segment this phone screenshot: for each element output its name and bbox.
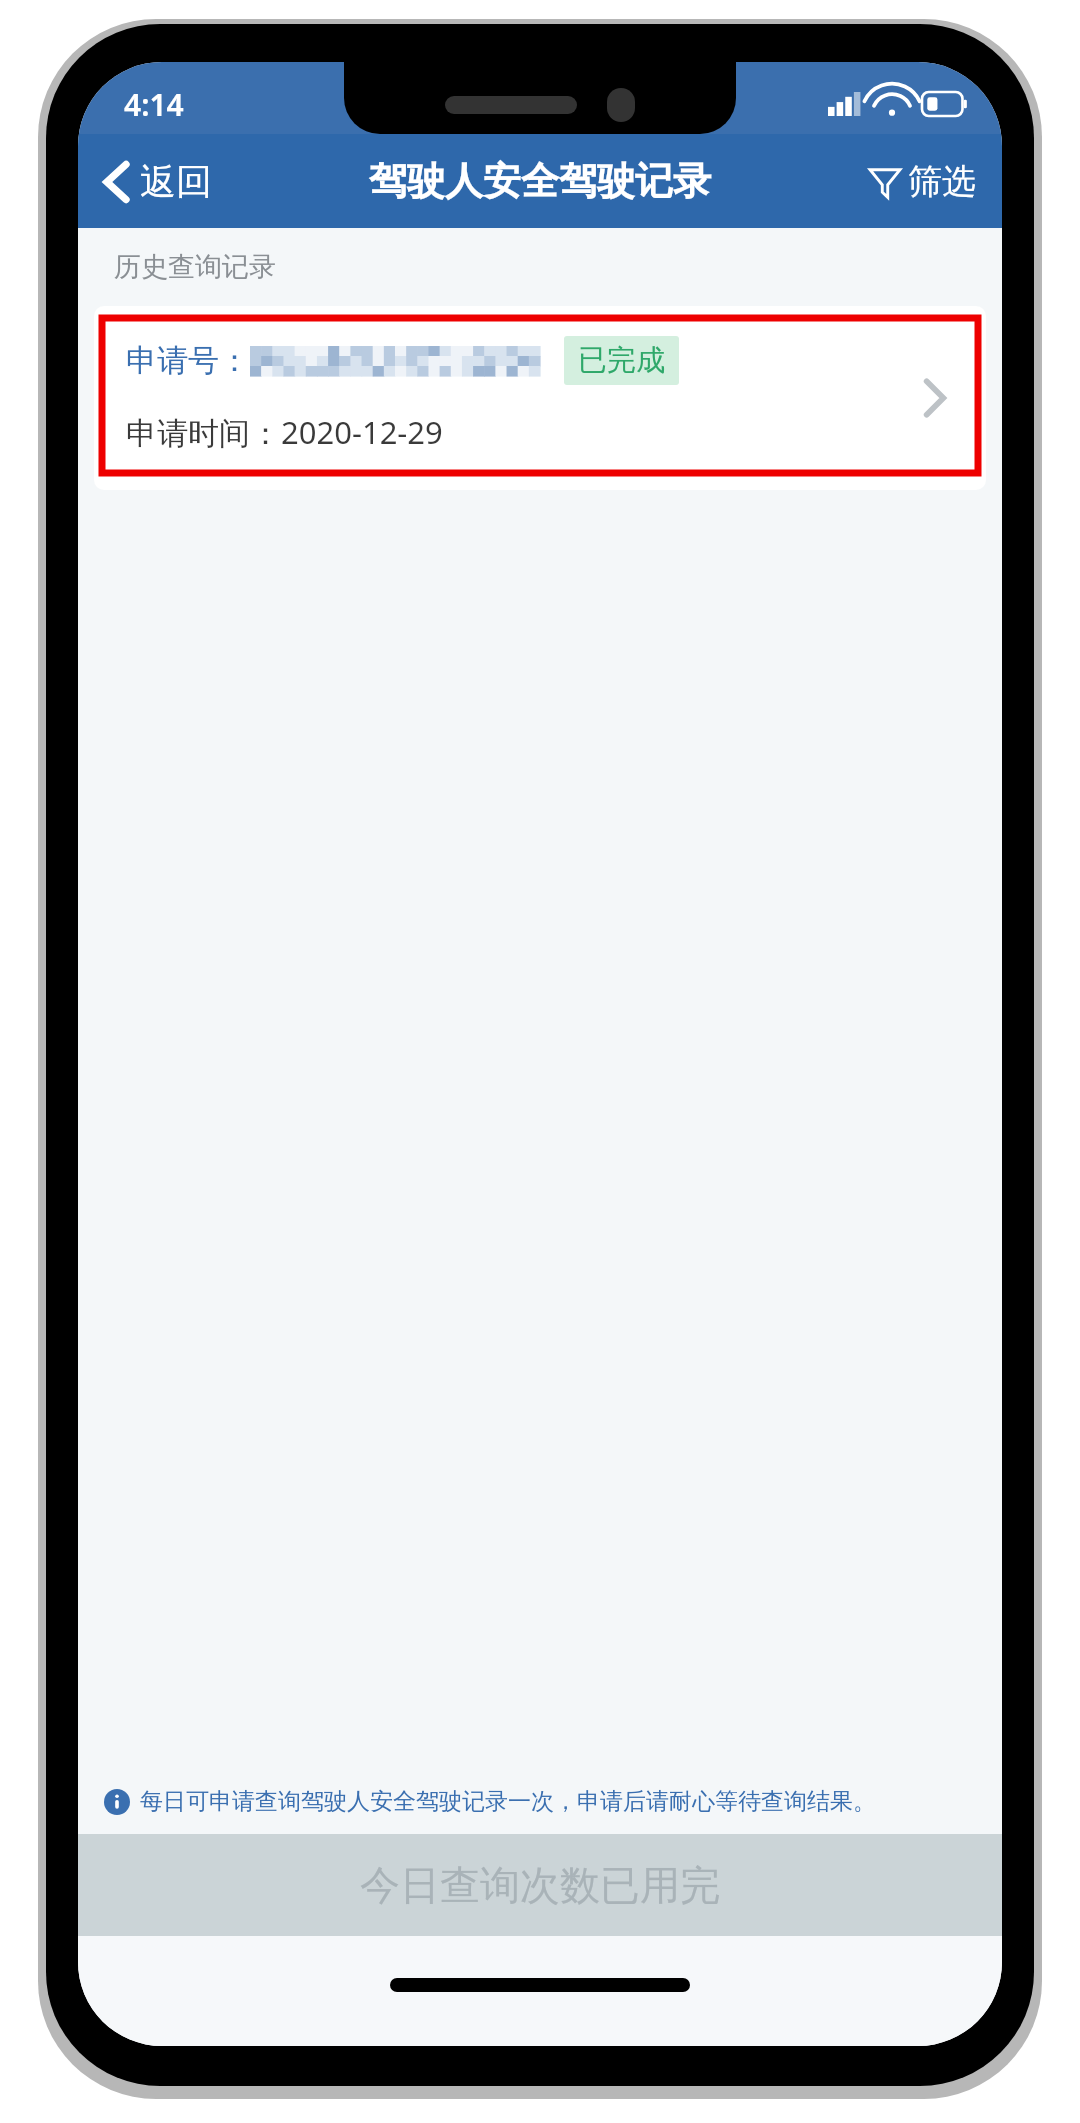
staticText: 每日可申请查询驾驶人安全驾驶记录一次，申请后请耐心等待查询结果。 — [140, 1787, 876, 1816]
staticText: 筛选 — [908, 160, 976, 203]
other: 筛选 — [868, 165, 902, 199]
staticText: 申请时间：2020-12-29 — [126, 411, 443, 453]
staticText: 历史查询记录 — [114, 250, 276, 284]
button[interactable]: 返回 — [78, 149, 230, 214]
button[interactable]: 今日查询次数已用完 — [78, 1834, 1002, 1936]
button[interactable]: 申请号： — [94, 306, 986, 490]
staticText: 今日查询次数已用完 — [360, 1860, 720, 1910]
staticText: 申请号： — [126, 341, 250, 380]
staticText: 驾驶人安全驾驶记录 — [369, 157, 711, 205]
button[interactable]: 筛选 — [850, 150, 1002, 213]
staticText: 已完成 — [578, 342, 665, 379]
staticText: 4:14 — [124, 84, 184, 125]
staticText: 返回 — [140, 159, 212, 204]
